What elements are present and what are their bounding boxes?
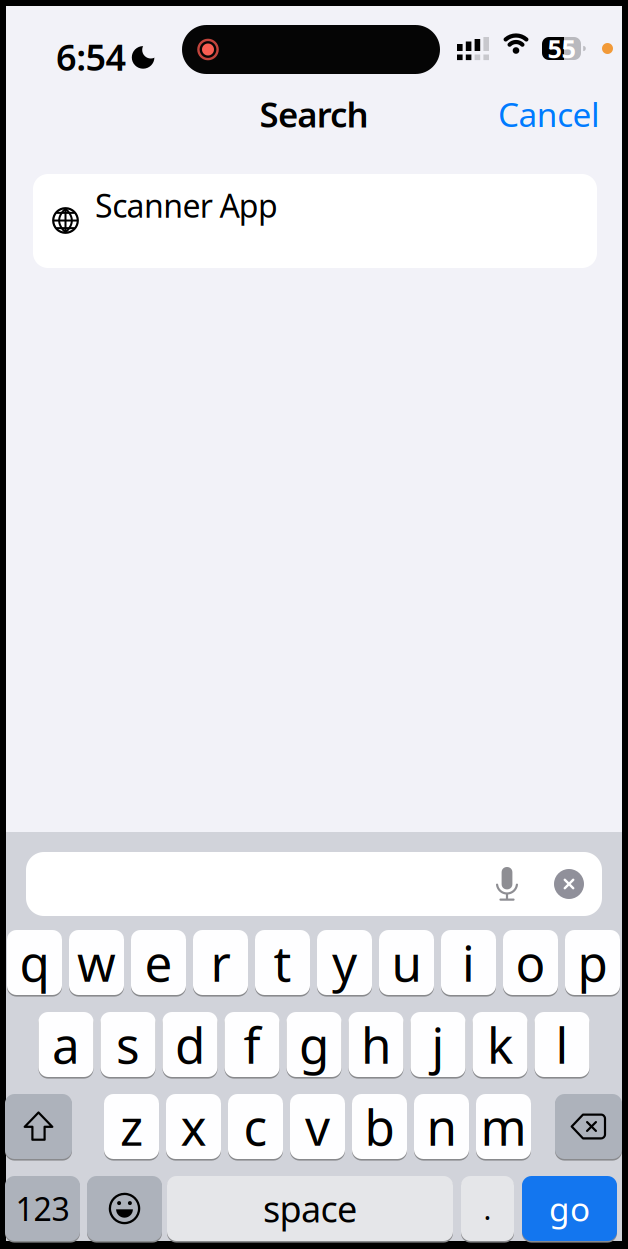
staticText: m <box>480 1094 526 1159</box>
staticText: h <box>361 1012 391 1077</box>
staticText: y <box>332 930 357 995</box>
button[interactable]: o <box>503 930 558 995</box>
button[interactable]: Scanner App <box>33 174 597 268</box>
staticText: . <box>483 1189 491 1228</box>
button[interactable]: l <box>534 1012 589 1077</box>
button[interactable]: q <box>7 930 62 995</box>
button[interactable]: w <box>69 930 124 995</box>
staticText: l <box>555 1012 568 1077</box>
staticText: 55 <box>547 32 575 65</box>
button[interactable]: i <box>441 930 496 995</box>
button[interactable]: Delete <box>555 1094 622 1159</box>
staticText: space <box>263 1185 357 1232</box>
staticText: a <box>52 1012 80 1077</box>
button[interactable]: f <box>224 1012 279 1077</box>
button[interactable]: Clear text <box>554 869 584 899</box>
staticText: u <box>391 930 421 995</box>
staticText: n <box>426 1094 456 1159</box>
button[interactable]: a <box>38 1012 93 1077</box>
staticText: 123 <box>15 1187 69 1230</box>
staticText: r <box>210 930 230 995</box>
button[interactable]: y <box>317 930 372 995</box>
button[interactable]: g <box>286 1012 341 1077</box>
staticText: e <box>144 930 172 995</box>
staticText: t <box>273 930 291 995</box>
button[interactable]: space <box>167 1176 453 1241</box>
staticText: Cancel <box>498 92 600 136</box>
staticText: g <box>299 1012 329 1077</box>
button[interactable]: t <box>255 930 310 995</box>
button[interactable]: m <box>476 1094 531 1159</box>
button[interactable]: e <box>131 930 186 995</box>
button[interactable]: r <box>193 930 248 995</box>
button[interactable]: go <box>522 1176 617 1241</box>
button[interactable]: Emoji <box>87 1176 162 1241</box>
button[interactable]: . <box>461 1176 514 1241</box>
button[interactable]: u <box>379 930 434 995</box>
button[interactable]: s <box>100 1012 155 1077</box>
button[interactable]: d <box>162 1012 217 1077</box>
staticText: f <box>243 1012 260 1077</box>
staticText: p <box>577 930 607 995</box>
staticText: Scanner App <box>95 184 278 226</box>
button[interactable]: Dictate <box>494 867 520 901</box>
staticText: v <box>305 1094 330 1159</box>
button[interactable]: n <box>414 1094 469 1159</box>
staticText: o <box>515 930 545 995</box>
staticText: x <box>180 1094 206 1159</box>
button[interactable]: b <box>352 1094 407 1159</box>
button[interactable]: Shift <box>5 1094 72 1159</box>
staticText: s <box>116 1012 140 1077</box>
staticText: d <box>175 1012 205 1077</box>
staticText: w <box>77 930 116 995</box>
button[interactable]: j <box>410 1012 465 1077</box>
staticText: z <box>120 1094 143 1159</box>
button[interactable]: x <box>166 1094 221 1159</box>
button[interactable]: p <box>565 930 620 995</box>
button[interactable]: h <box>348 1012 403 1077</box>
staticText: k <box>487 1012 513 1077</box>
staticText: 6:54 <box>56 33 127 81</box>
staticText: go <box>549 1186 590 1231</box>
staticText: c <box>243 1094 267 1159</box>
staticText: q <box>19 930 49 995</box>
button[interactable]: v <box>290 1094 345 1159</box>
staticText: b <box>364 1094 394 1159</box>
staticText: j <box>431 1012 444 1077</box>
button[interactable]: Numbers <box>5 1176 80 1241</box>
button[interactable]: Cancel <box>440 94 600 134</box>
button[interactable]: k <box>472 1012 527 1077</box>
button[interactable]: c <box>228 1094 283 1159</box>
staticText: Search <box>259 91 368 137</box>
staticText: i <box>462 930 475 995</box>
button[interactable]: z <box>104 1094 159 1159</box>
